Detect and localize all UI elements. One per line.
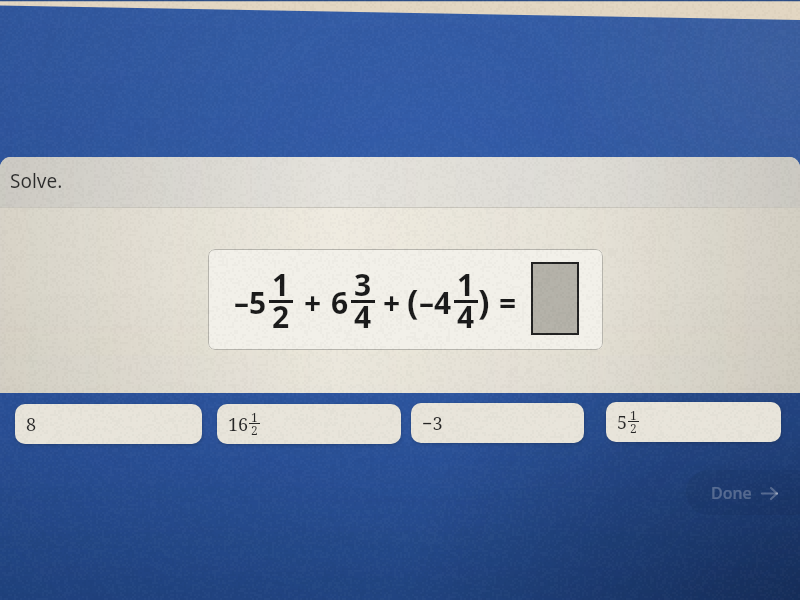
staticText: 4 [354,296,372,337]
staticText: 1 [457,264,475,305]
staticText: 2 [251,422,258,438]
staticText: 1 [251,409,258,425]
staticText: 2 [272,296,290,337]
staticText: Done [711,482,752,504]
staticText: 3 [354,264,372,305]
button[interactable]: Answer 8 [15,404,202,444]
staticText: 8 [26,412,37,437]
staticText: –5 [234,282,267,323]
staticText: 2 [630,420,637,436]
staticText: + [304,282,322,323]
staticText: 6 [331,282,349,323]
button[interactable]: Done [686,470,800,515]
staticText: Solve. [10,168,63,194]
staticText: –4 [419,282,452,323]
staticText: 4 [457,296,475,337]
button[interactable]: Answer 16 and a half [217,404,401,444]
button[interactable]: Answer 5 and a half [606,402,781,442]
staticText: + [383,282,401,323]
staticText: ( [407,278,419,324]
staticText: ) [478,278,490,324]
staticText: −3 [422,411,443,436]
staticText: 1 [272,264,290,305]
staticText: 5 [617,410,628,435]
staticText: 16 [228,412,249,437]
staticText: = [499,282,517,323]
staticText: 1 [630,407,637,423]
button[interactable]: Answer minus 3 [411,403,584,443]
